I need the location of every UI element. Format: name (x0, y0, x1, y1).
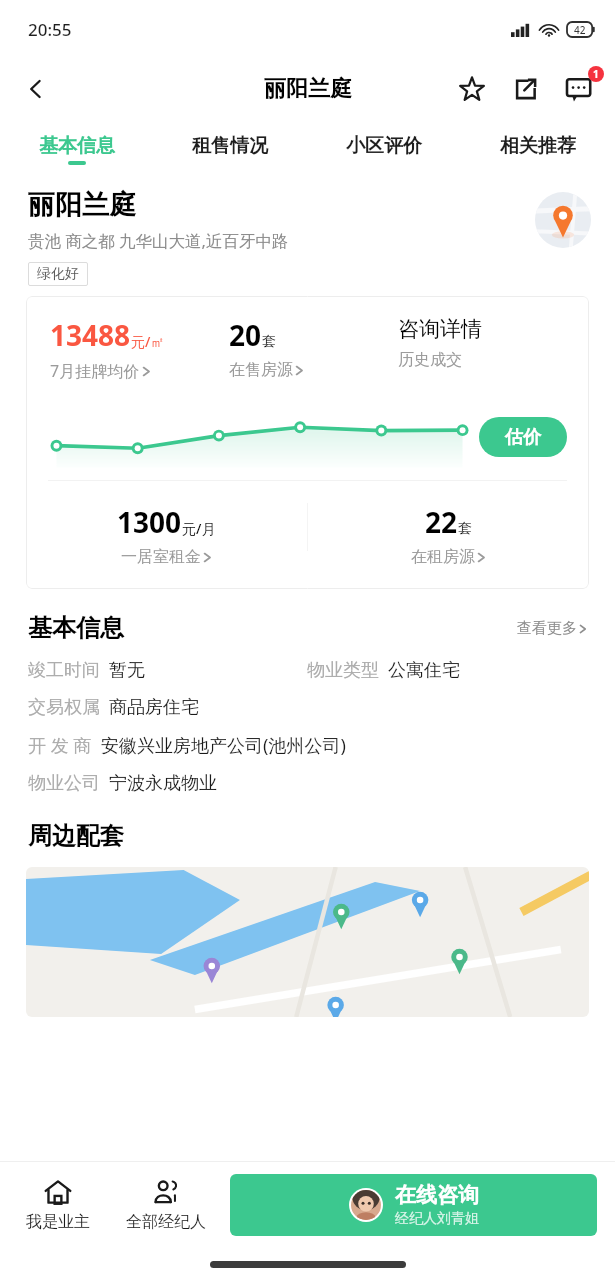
button[interactable]: 相关推荐 (461, 120, 615, 178)
staticText: 交易权属 (28, 696, 100, 719)
button[interactable]: 基本信息 (0, 120, 153, 178)
staticText: 1 (593, 67, 599, 81)
button[interactable]: Map location (535, 192, 591, 248)
staticText: 贵池 商之都 九华山大道,近百牙中路 (28, 229, 289, 252)
staticText: 20:55 (28, 18, 72, 41)
staticText: 13488 (50, 316, 131, 354)
staticText: 安徽兴业房地产公司(池州公司) (101, 733, 346, 758)
button[interactable]: Back (10, 63, 62, 115)
button[interactable]: 我是业主 (6, 1162, 110, 1248)
staticText: 在租房源 (411, 547, 475, 567)
staticText: 公寓住宅 (388, 659, 460, 682)
staticText: 物业类型 (307, 659, 379, 682)
button[interactable]: 13488 (50, 316, 229, 382)
staticText: 套 (262, 333, 276, 351)
staticText: 宁波永成物业 (109, 772, 217, 795)
staticText: 全部经纪人 (126, 1212, 206, 1232)
staticText: 咨询详情 (398, 316, 482, 342)
button[interactable]: Share (505, 68, 547, 110)
staticText: 物业公司 (28, 772, 100, 795)
button[interactable]: 估价 (479, 417, 567, 457)
staticText: 元/㎡ (131, 332, 165, 351)
staticText: 一居室租金 (121, 547, 201, 567)
staticText: 22 (425, 503, 458, 541)
staticText: 历史成交 (398, 350, 462, 370)
staticText: 开 发 商 (28, 733, 92, 758)
staticText: 估价 (505, 426, 541, 449)
staticText: 元/月 (182, 519, 216, 538)
button[interactable]: 在线咨询 (230, 1174, 597, 1236)
staticText: 竣工时间 (28, 659, 100, 682)
button[interactable]: Map (26, 867, 589, 1017)
staticText: 周边配套 (28, 821, 124, 851)
staticText: 小区评价 (346, 134, 422, 158)
staticText: 丽阳兰庭 (264, 75, 352, 103)
button[interactable]: 全部经纪人 (110, 1162, 222, 1248)
staticText: 租售情况 (192, 134, 268, 158)
button[interactable]: 查看更多 (517, 619, 587, 638)
staticText: 在线咨询 (395, 1182, 479, 1208)
staticText: 套 (458, 520, 472, 538)
staticText: 42 (574, 23, 586, 37)
staticText: 查看更多 (517, 619, 577, 638)
staticText: 相关推荐 (500, 134, 576, 158)
staticText: 我是业主 (26, 1212, 90, 1232)
staticText: 丽阳兰庭 (28, 188, 136, 222)
staticText: 在售房源 (229, 360, 293, 380)
staticText: 基本信息 (39, 134, 115, 158)
button[interactable]: 小区评价 (307, 120, 461, 178)
staticText: 20 (229, 316, 262, 354)
button[interactable]: 20 (229, 316, 398, 380)
staticText: 经纪人刘青姐 (395, 1210, 479, 1228)
staticText: 绿化好 (37, 265, 79, 283)
staticText: 暂无 (109, 659, 145, 682)
button[interactable]: Messages (559, 68, 601, 110)
button[interactable]: 1300 (117, 503, 216, 567)
button[interactable]: Favorite (451, 68, 493, 110)
button[interactable]: 租售情况 (153, 120, 307, 178)
staticText: 商品房住宅 (109, 696, 199, 719)
staticText: 1300 (117, 503, 182, 541)
staticText: 基本信息 (28, 613, 124, 643)
staticText: 7月挂牌均价 (50, 360, 140, 382)
button[interactable]: 22 (411, 503, 486, 567)
